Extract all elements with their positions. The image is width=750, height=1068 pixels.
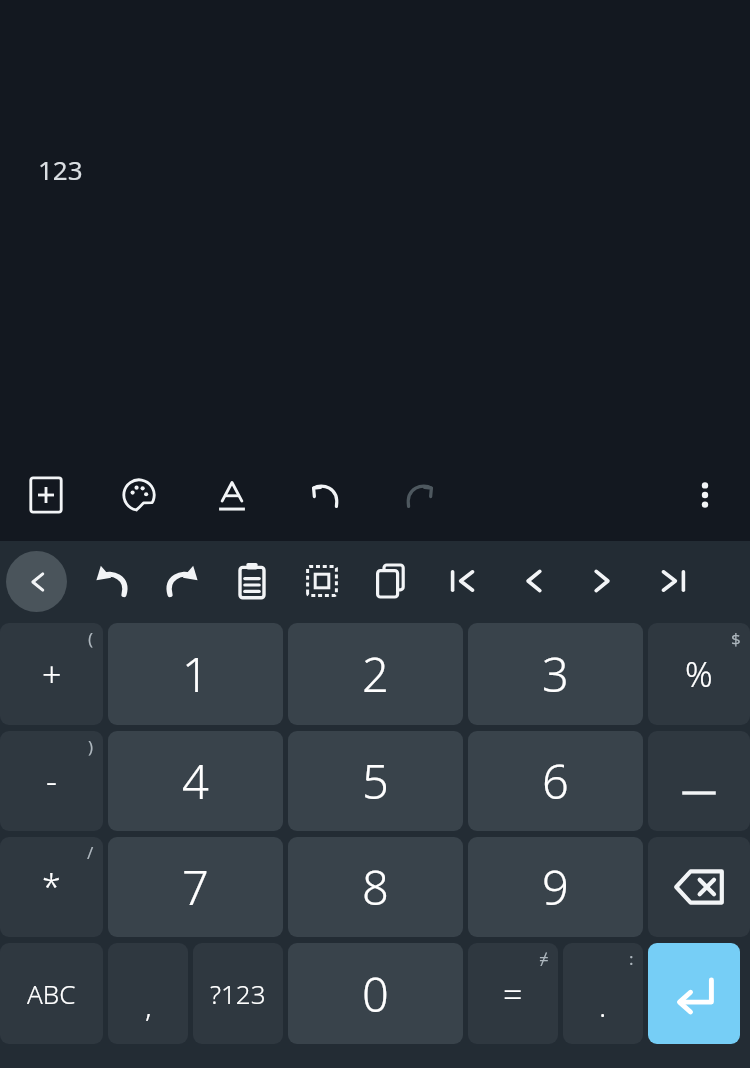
button[interactable]: Enter — [648, 943, 740, 1044]
staticText: 1 — [182, 642, 209, 706]
staticText: 4 — [182, 749, 209, 813]
staticText: ?123 — [210, 976, 266, 1011]
button[interactable]: Text format — [201, 464, 263, 526]
button[interactable]: 5 — [288, 731, 463, 831]
button[interactable]: 4 — [108, 731, 283, 831]
staticText: 6 — [542, 749, 569, 813]
staticText: ≠ — [539, 947, 549, 970]
button[interactable]: 1 — [108, 623, 283, 725]
button[interactable]: 7 — [108, 837, 283, 937]
staticText: ( — [88, 627, 94, 650]
staticText: ) — [88, 735, 94, 758]
button[interactable]: Left — [502, 550, 564, 612]
button[interactable]: . — [563, 943, 643, 1044]
button[interactable]: Backspace — [648, 837, 750, 937]
button[interactable]: % — [648, 623, 750, 725]
button[interactable]: 8 — [288, 837, 463, 937]
button[interactable]: Color — [108, 464, 170, 526]
button[interactable]: 3 — [468, 623, 643, 725]
staticText: / — [87, 841, 94, 864]
staticText: ABC — [27, 976, 76, 1011]
button[interactable]: Undo — [294, 464, 356, 526]
button[interactable]: Undo — [81, 550, 143, 612]
button[interactable]: Right — [572, 550, 634, 612]
button[interactable]: ABC — [0, 943, 103, 1044]
staticText: 7 — [182, 855, 209, 919]
button[interactable]: Underscore — [648, 731, 750, 831]
staticText: $ — [731, 627, 741, 650]
staticText: - — [46, 758, 57, 804]
button[interactable]: Redo — [151, 550, 213, 612]
staticText: 8 — [362, 855, 389, 919]
staticText: 123 — [38, 152, 83, 187]
staticText: . — [599, 985, 607, 1026]
button[interactable]: Paste — [221, 550, 283, 612]
button[interactable]: , — [108, 943, 188, 1044]
button[interactable]: 2 — [288, 623, 463, 725]
button[interactable]: Redo — [389, 464, 451, 526]
button[interactable]: To start — [432, 550, 494, 612]
button[interactable]: + — [0, 623, 103, 725]
button[interactable]: 6 — [468, 731, 643, 831]
staticText: + — [42, 651, 62, 697]
staticText: : — [629, 947, 634, 970]
button[interactable]: To end — [642, 550, 704, 612]
button[interactable]: Copy — [361, 550, 423, 612]
button[interactable]: 0 — [288, 943, 463, 1044]
staticText: = — [503, 971, 523, 1017]
button[interactable]: Hide toolbar — [6, 551, 67, 612]
staticText: 9 — [542, 855, 569, 919]
staticText: 2 — [362, 642, 389, 706]
staticText: % — [685, 651, 713, 697]
button[interactable]: = — [468, 943, 558, 1044]
button[interactable]: - — [0, 731, 103, 831]
staticText: , — [145, 985, 152, 1026]
button[interactable]: ?123 — [193, 943, 283, 1044]
staticText: 5 — [362, 749, 389, 813]
button[interactable]: 9 — [468, 837, 643, 937]
button[interactable]: Select all — [291, 550, 353, 612]
staticText: 0 — [362, 962, 389, 1026]
staticText: 3 — [542, 642, 569, 706]
button[interactable]: Insert — [15, 464, 77, 526]
button[interactable]: More options — [674, 464, 736, 526]
staticText: * — [42, 864, 61, 910]
button[interactable]: * — [0, 837, 103, 937]
